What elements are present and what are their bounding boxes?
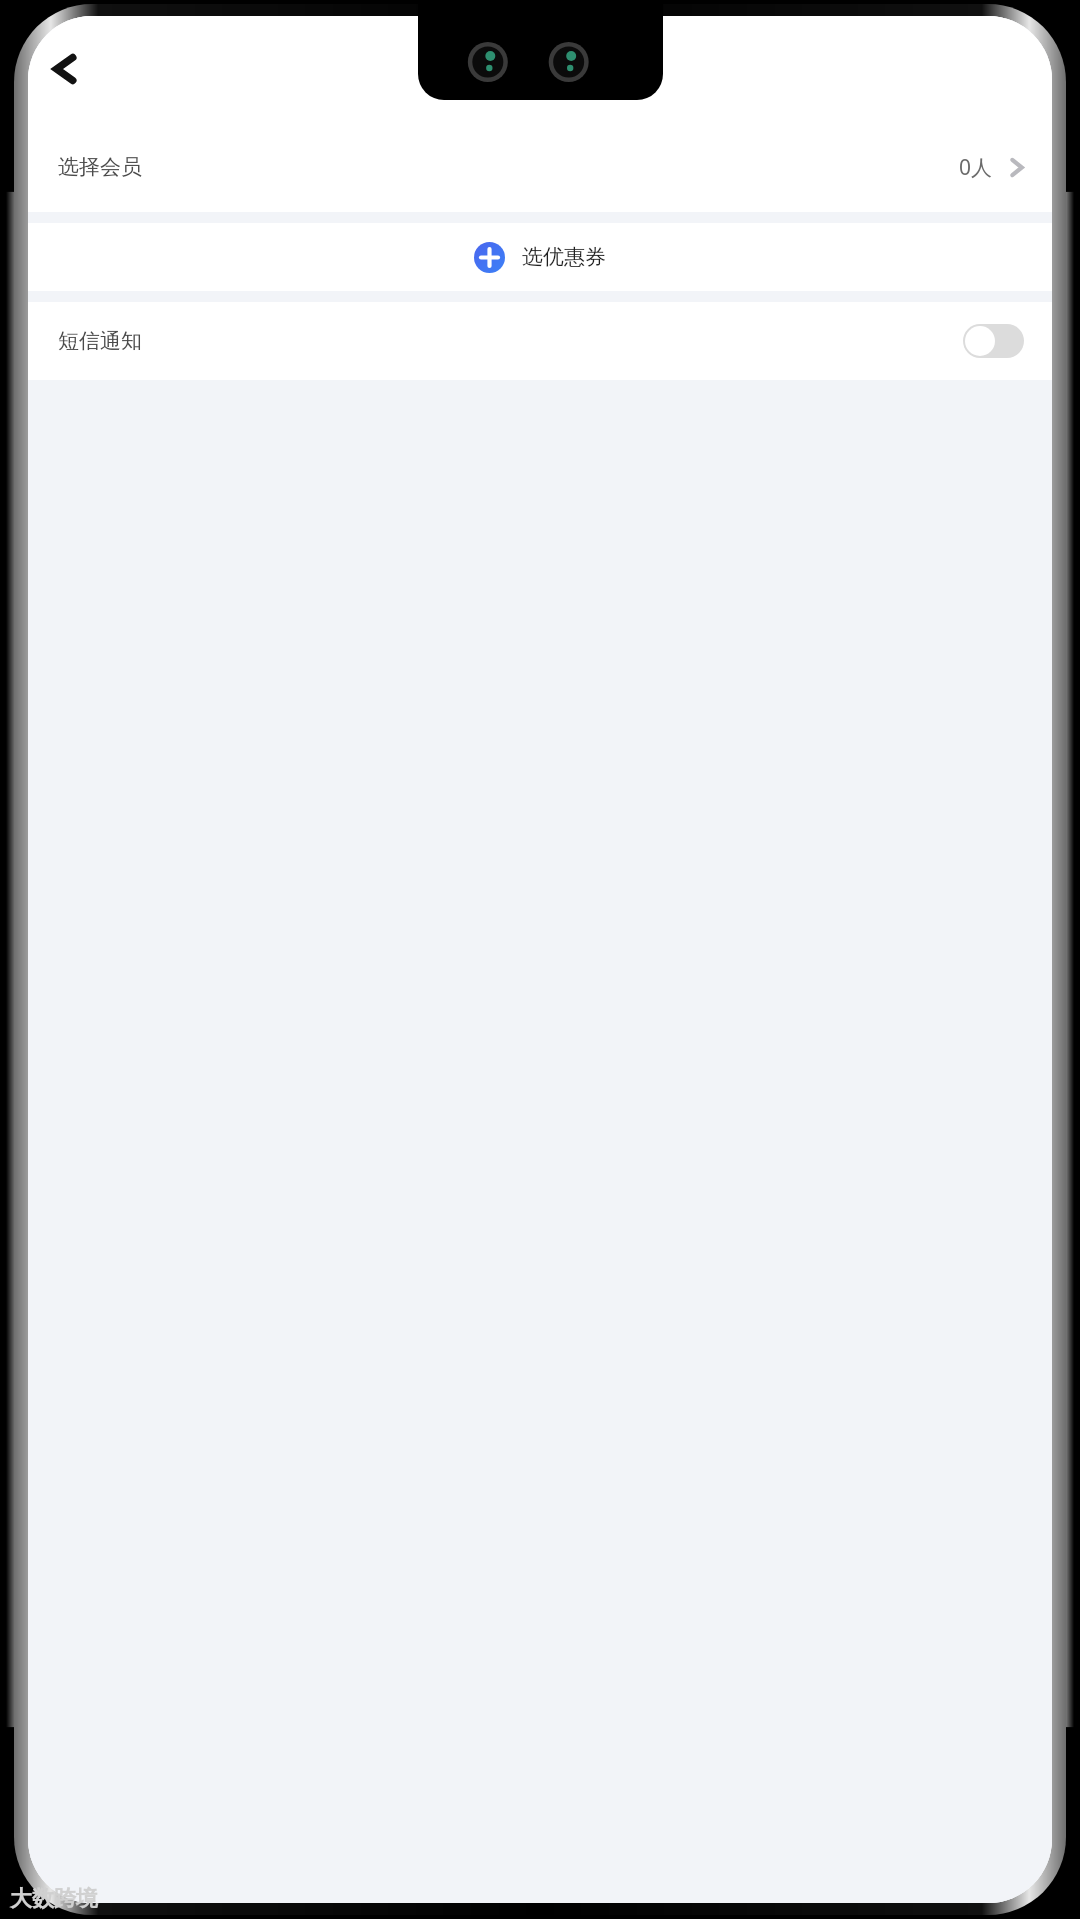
button[interactable]: 短信通知 (28, 302, 1052, 380)
button[interactable]: 选择会员 (28, 122, 1052, 212)
staticText: 选择会员 (58, 154, 142, 180)
staticText: 批量发券 (490, 54, 590, 85)
staticText: 选优惠券 (522, 244, 606, 270)
staticText: 0人 (959, 153, 993, 182)
staticText: 大数跨境 (10, 1885, 98, 1913)
staticText: 短信通知 (58, 328, 142, 354)
button[interactable]: 短信通知开关 (963, 324, 1024, 358)
button[interactable]: 返回 (34, 38, 96, 100)
button[interactable]: 选优惠券 (28, 223, 1052, 291)
